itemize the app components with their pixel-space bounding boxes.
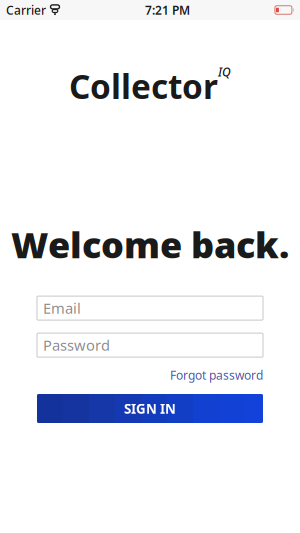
staticText: Password: [43, 335, 110, 355]
staticText: IQ: [218, 64, 231, 80]
staticText: Email: [43, 298, 81, 318]
staticText: Forgot password: [170, 367, 263, 383]
staticText: 7:21 PM: [145, 2, 190, 18]
button[interactable]: Forgot password: [170, 367, 263, 383]
button[interactable]: Password: [37, 333, 263, 357]
staticText: Welcome back.: [11, 220, 289, 268]
button[interactable]: SIGN IN: [37, 394, 263, 423]
staticText: Carrier: [6, 2, 46, 18]
staticText: Collector: [69, 64, 218, 108]
button[interactable]: Email: [37, 296, 263, 320]
staticText: SIGN IN: [124, 400, 176, 417]
